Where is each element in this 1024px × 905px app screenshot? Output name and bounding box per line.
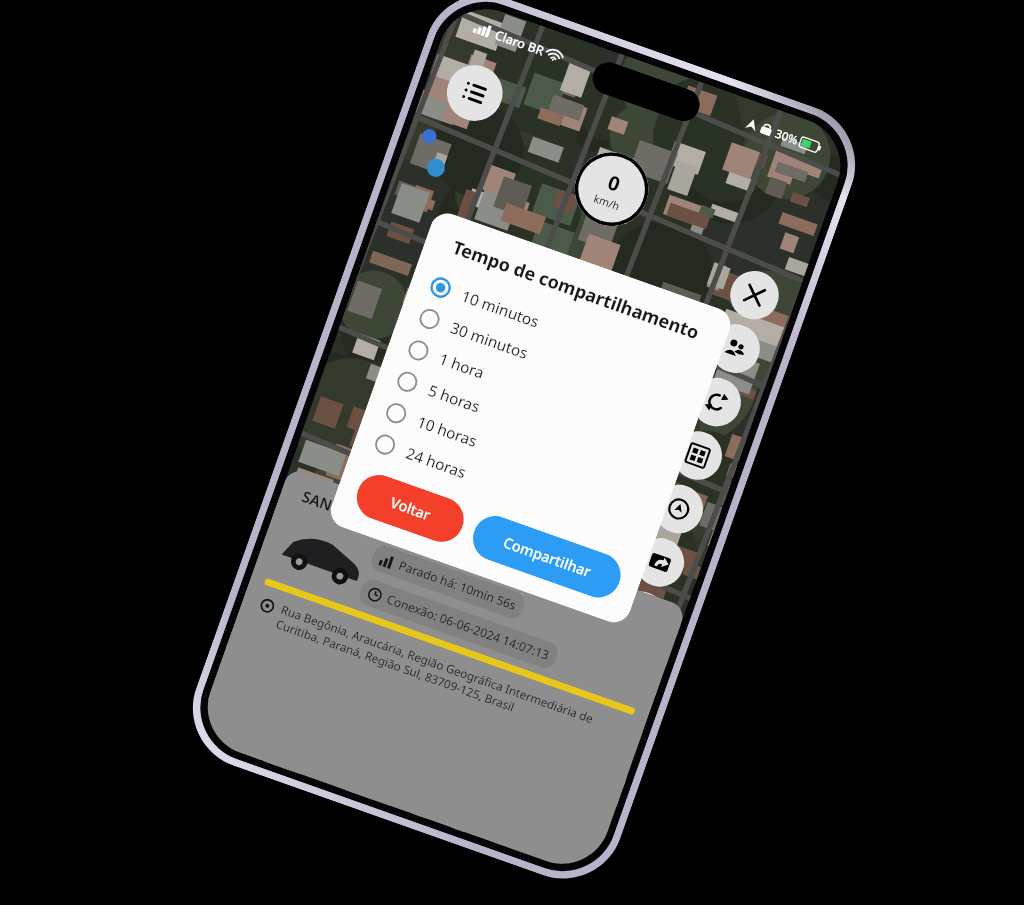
staticText: 10 minutos	[459, 285, 542, 332]
button[interactable]: 30 minutos	[414, 300, 687, 424]
staticText: SAN...	[299, 486, 348, 520]
button[interactable]: Compass	[648, 478, 710, 540]
staticText: 0	[604, 168, 624, 197]
staticText: Parado há: 10min 56s	[397, 557, 518, 613]
button[interactable]: Layers	[667, 424, 729, 486]
staticText: Tempo de compartilhamento	[441, 232, 711, 347]
button[interactable]: Street view	[610, 585, 672, 647]
button[interactable]: 1 hora	[403, 331, 675, 455]
button[interactable]: Voltar	[350, 469, 470, 548]
staticText: Claro BR	[493, 26, 547, 59]
staticText: 24 horas	[403, 442, 470, 483]
staticText: 30%	[773, 125, 800, 148]
button[interactable]: Refresh	[686, 371, 748, 433]
staticText: Compartilhar	[501, 532, 594, 582]
staticText: 10 horas	[414, 411, 481, 452]
staticText: 1 hora	[437, 348, 488, 383]
button[interactable]: SAN...	[194, 467, 687, 877]
button[interactable]: 10 minutos	[425, 268, 698, 392]
button[interactable]: 5 horas	[392, 363, 664, 487]
staticText: 14:07	[634, 75, 673, 104]
button[interactable]: Contacts	[704, 318, 766, 380]
button[interactable]: Close	[723, 264, 785, 326]
staticText: Conexão: 06-06-2024 14:07:13	[385, 591, 551, 663]
button[interactable]: Share view	[629, 531, 691, 593]
button[interactable]: 10 horas	[381, 394, 653, 518]
button[interactable]: 24 horas	[370, 425, 642, 549]
staticText: Rua Begônia, Araucária, Região Geográfic…	[274, 601, 627, 752]
staticText: 5 horas	[425, 380, 483, 417]
button[interactable]: Menu	[439, 57, 510, 129]
staticText: Voltar	[388, 492, 433, 525]
staticText: 30 minutos	[448, 317, 531, 363]
staticText: km/h	[592, 191, 622, 213]
button[interactable]: Compartilhar	[467, 510, 627, 604]
